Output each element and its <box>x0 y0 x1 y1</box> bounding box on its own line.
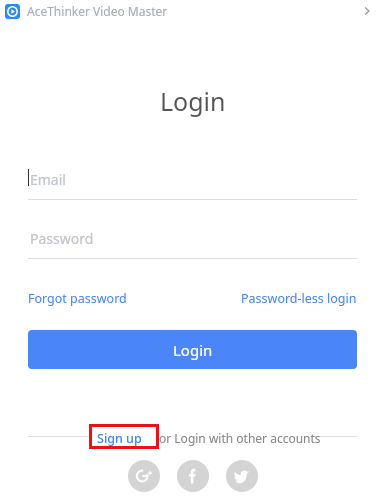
button[interactable]: Forgot password <box>28 290 127 307</box>
button[interactable]: Sign in with Twitter <box>226 460 258 492</box>
staticText: Login <box>173 340 213 360</box>
staticText: Sign up <box>97 430 142 447</box>
staticText: Login <box>160 84 226 118</box>
button[interactable]: Sign in with Google <box>128 460 160 492</box>
button[interactable]: Password-less login <box>241 290 357 307</box>
staticText: AceThinker Video Master <box>27 3 168 19</box>
button[interactable]: Expand <box>355 0 379 22</box>
button[interactable]: Sign in with Facebook <box>177 460 209 492</box>
button[interactable]: Password <box>28 215 357 259</box>
staticText: Email <box>30 170 66 189</box>
button[interactable]: Email <box>28 156 357 200</box>
button[interactable]: Login <box>28 330 357 369</box>
staticText: or Login with other accounts <box>159 430 321 446</box>
staticText: Forgot password <box>28 290 127 307</box>
staticText: Password-less login <box>241 290 357 307</box>
button[interactable]: Sign up <box>97 430 142 447</box>
staticText: Password <box>30 229 94 248</box>
